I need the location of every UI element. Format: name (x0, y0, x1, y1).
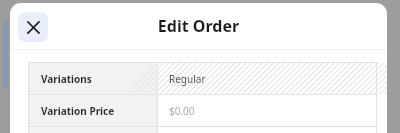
button[interactable]: Variation Price (28, 95, 377, 126)
staticText: Regular (169, 72, 206, 86)
staticText: Edit Order (10, 15, 387, 37)
staticText: $0.00 (169, 104, 195, 118)
staticText: Variations (41, 72, 92, 86)
button[interactable] (28, 127, 377, 133)
staticText: Variation Price (41, 104, 115, 118)
button[interactable]: Variations (28, 63, 377, 94)
button[interactable]: Close (18, 12, 48, 42)
